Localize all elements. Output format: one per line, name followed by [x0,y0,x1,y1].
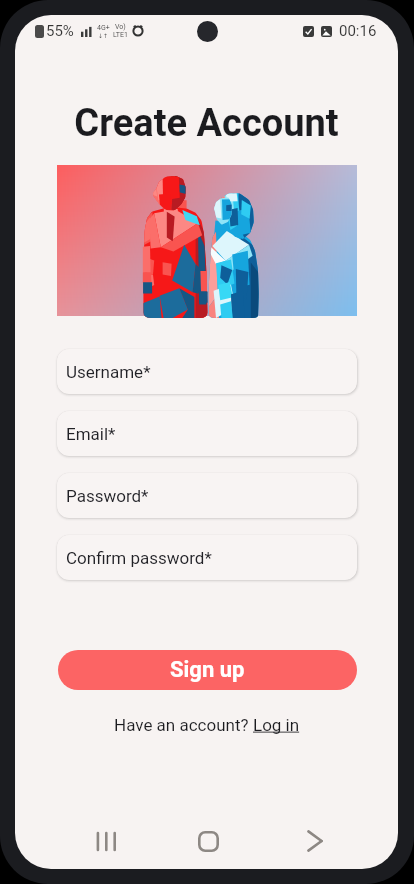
staticText: Vo) [115,23,126,31]
staticText: Username* [66,362,151,382]
staticText: Email* [66,424,116,444]
button[interactable]: Log in [253,715,300,735]
button[interactable]: Recent apps [84,826,125,856]
button[interactable]: Confirm password* [57,535,357,580]
button[interactable]: Password* [57,473,357,518]
staticText: 55% [46,22,74,40]
staticText: Password* [66,486,149,506]
staticText: Have an account? [114,715,253,735]
staticText: Sign up [170,657,245,683]
button[interactable]: Home [187,826,229,856]
staticText: 4G+ [97,24,110,32]
staticText: LTE1 [113,31,128,39]
staticText: Create Account [15,101,398,146]
staticText: 00:16 [339,22,377,40]
staticText: Log in [253,715,300,735]
staticText: ↓↑ [98,32,109,39]
button[interactable]: Back [294,826,335,856]
button[interactable]: Username* [57,349,357,394]
button[interactable]: Email* [57,411,357,456]
staticText: Confirm password* [66,548,212,568]
button[interactable]: Sign up [58,650,357,690]
